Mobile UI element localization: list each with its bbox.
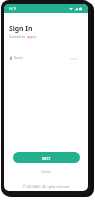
staticText: NEXT <box>42 156 51 160</box>
staticText: Sign In <box>9 24 33 33</box>
staticText: Connect to <box>9 35 26 39</box>
button[interactable]: Cancel <box>41 170 51 174</box>
staticText: 6:19 <box>9 6 16 11</box>
button[interactable]: app.io <box>27 35 37 39</box>
button[interactable]: Name <box>10 56 83 60</box>
staticText: © 2023 ABC. All rights reserved <box>4 185 88 189</box>
staticText: Name <box>14 56 23 60</box>
button[interactable]: NEXT <box>13 152 80 163</box>
